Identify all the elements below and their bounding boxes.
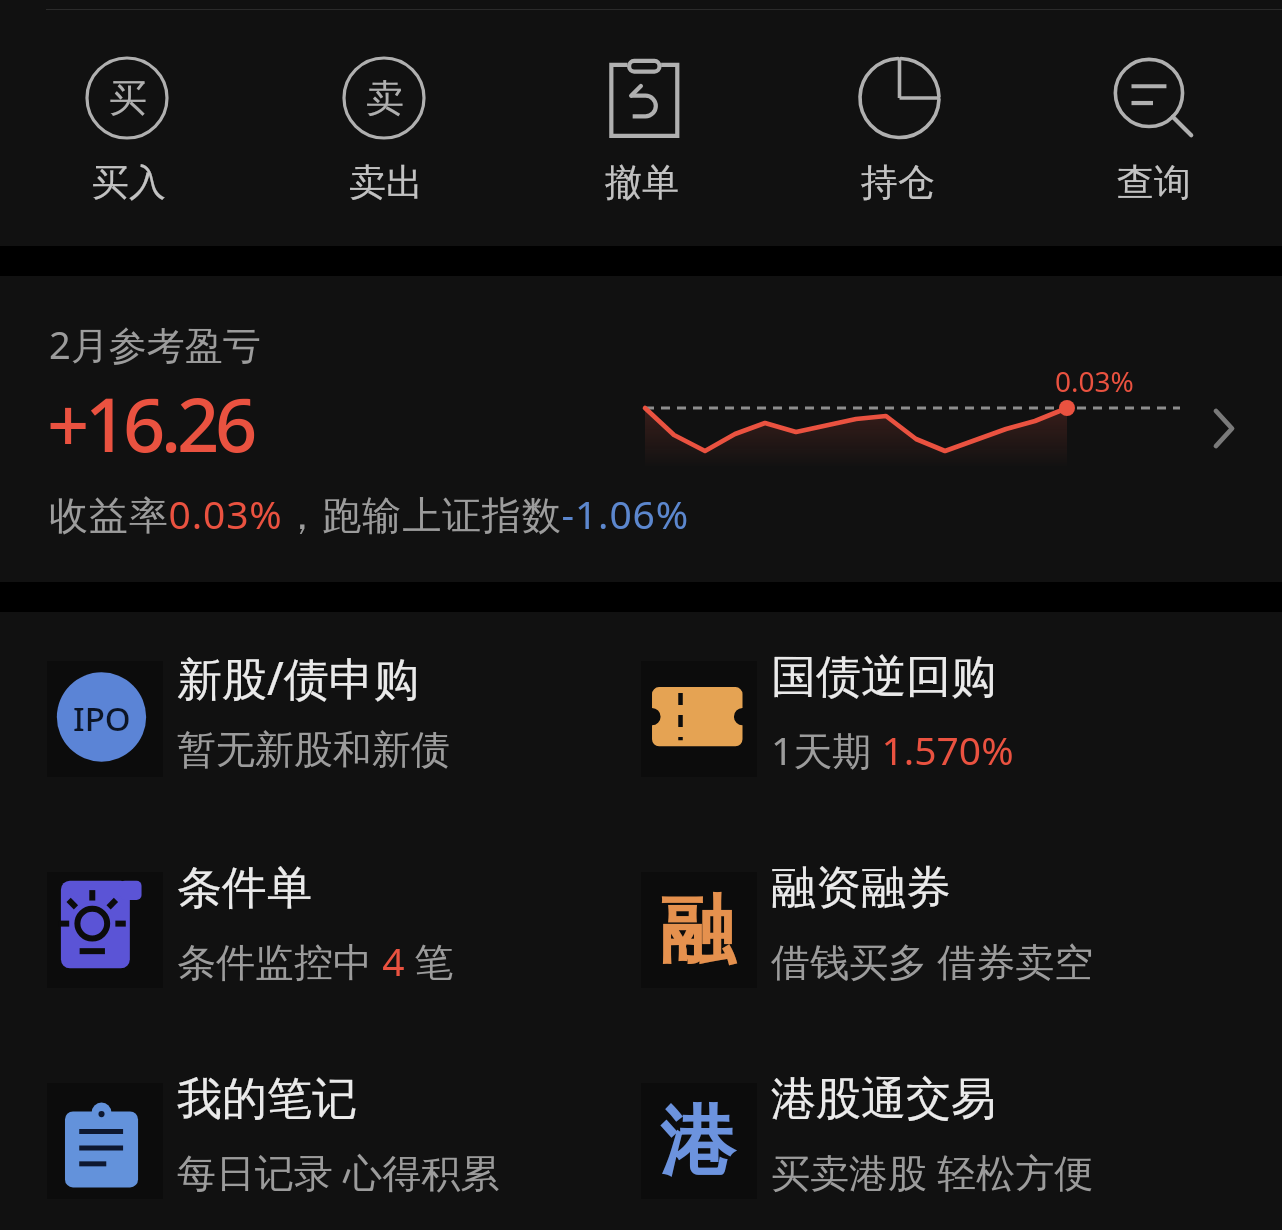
staticText: 收益率0.03%，跑输上证指数-1.06% xyxy=(49,487,689,540)
staticText: 国债逆回购 xyxy=(771,649,996,706)
staticText: 新股/债申购 xyxy=(177,647,419,708)
button[interactable]: 国债逆回购 xyxy=(641,612,1235,823)
button[interactable]: 持仓 xyxy=(770,0,1026,236)
button[interactable]: 条件单 xyxy=(47,823,641,1034)
staticText: 融资融券 xyxy=(771,860,951,917)
button[interactable]: 港 xyxy=(641,1034,1235,1230)
button[interactable]: 我的笔记 xyxy=(47,1034,641,1230)
staticText: 1天期 1.570% xyxy=(771,723,1014,775)
staticText: 买卖港股 轻松方便 xyxy=(771,1145,1094,1197)
staticText: 卖 xyxy=(366,74,404,122)
button[interactable]: 查询 xyxy=(1026,0,1282,236)
staticText: 买 xyxy=(109,74,147,122)
button[interactable]: 买 xyxy=(0,0,257,236)
staticText: 每日记录 心得积累 xyxy=(177,1145,500,1197)
staticText: +16.26 xyxy=(47,373,253,474)
button[interactable]: 卖 xyxy=(257,0,514,236)
staticText: 条件监控中 4 笔 xyxy=(177,934,454,986)
button[interactable]: 撤单 xyxy=(514,0,770,236)
button[interactable]: 融 xyxy=(641,823,1235,1034)
staticText: 我的笔记 xyxy=(177,1071,357,1128)
staticText: 查询 xyxy=(1117,159,1191,206)
staticText: 借钱买多 借券卖空 xyxy=(771,934,1094,986)
staticText: 0.03% xyxy=(1055,362,1134,400)
button[interactable]: 查看盈亏详情 xyxy=(1204,394,1244,464)
staticText: 条件单 xyxy=(177,860,312,917)
staticText: IPO xyxy=(73,696,131,741)
staticText: 撤单 xyxy=(605,159,679,206)
staticText: 融 xyxy=(660,884,735,978)
staticText: 暂无新股和新债 xyxy=(177,725,450,774)
staticText: 卖出 xyxy=(349,159,423,206)
button[interactable]: IPO xyxy=(47,612,641,823)
button[interactable]: 2月参考盈亏 xyxy=(0,276,1282,582)
staticText: 2月参考盈亏 xyxy=(49,318,261,370)
staticText: 港股通交易 xyxy=(771,1071,996,1128)
staticText: 持仓 xyxy=(861,159,935,206)
staticText: 买入 xyxy=(92,159,166,206)
staticText: 港 xyxy=(660,1095,735,1189)
